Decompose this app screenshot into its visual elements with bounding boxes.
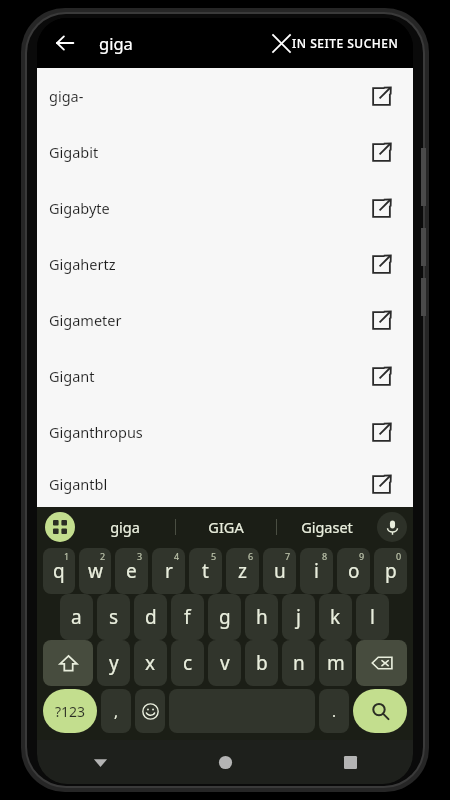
staticText: Gigantbl	[49, 474, 367, 494]
staticText: y	[109, 650, 119, 676]
button[interactable]: Open Gigantbl	[367, 470, 395, 498]
button[interactable]: giga	[75, 507, 175, 547]
button[interactable]: IN SEITE SUCHEN	[284, 21, 407, 65]
button[interactable]: Open Giganthropus	[367, 418, 395, 446]
button[interactable]: Recent apps	[288, 740, 413, 784]
staticText: Gigabyte	[49, 198, 367, 218]
button[interactable]: Gigant	[37, 348, 413, 404]
staticText: 5	[211, 550, 217, 562]
button[interactable]: b	[245, 640, 278, 686]
staticText: f	[184, 604, 191, 630]
button[interactable]: l	[356, 594, 389, 640]
staticText: 2	[100, 550, 106, 562]
button[interactable]: q	[43, 548, 75, 594]
staticText: giga	[99, 32, 133, 54]
staticText: q	[53, 558, 65, 584]
button[interactable]: Open Gigabit	[367, 138, 395, 166]
button[interactable]: Open giga-	[367, 82, 395, 110]
button[interactable]: Open Gigant	[367, 362, 395, 390]
button[interactable]: a	[60, 594, 93, 640]
staticText: b	[256, 650, 268, 676]
button[interactable]: Gigabyte	[37, 180, 413, 236]
staticText: a	[71, 604, 82, 630]
button[interactable]: Emoji	[135, 689, 165, 733]
staticText: s	[109, 604, 119, 630]
button[interactable]: v	[208, 640, 241, 686]
staticText: GIGA	[208, 517, 244, 537]
staticText: w	[88, 558, 103, 584]
staticText: ?123	[55, 702, 86, 721]
staticText: IN SEITE SUCHEN	[292, 35, 399, 51]
staticText: d	[145, 604, 157, 630]
staticText: k	[330, 604, 341, 630]
button[interactable]: x	[134, 640, 167, 686]
staticText: z	[238, 558, 247, 584]
button[interactable]: e	[115, 548, 148, 594]
button[interactable]: Comma	[101, 689, 131, 733]
staticText: 0	[396, 550, 402, 562]
button[interactable]: n	[282, 640, 315, 686]
button[interactable]: Backspace	[356, 640, 407, 686]
button[interactable]: Keyboard toolbar	[45, 512, 75, 542]
button[interactable]: s	[97, 594, 130, 640]
staticText: ,	[114, 701, 119, 721]
button[interactable]: t	[189, 548, 222, 594]
staticText: 3	[137, 550, 143, 562]
button[interactable]: Back	[45, 23, 85, 63]
button[interactable]: Gigantbl	[37, 460, 413, 507]
staticText: Gigant	[49, 366, 367, 386]
staticText: e	[126, 558, 137, 584]
staticText: g	[219, 604, 231, 630]
staticText: u	[274, 558, 286, 584]
button[interactable]: d	[134, 594, 167, 640]
button[interactable]: w	[79, 548, 111, 594]
button[interactable]: Open Gigabyte	[367, 194, 395, 222]
button[interactable]: g	[208, 594, 241, 640]
button[interactable]: c	[171, 640, 204, 686]
button[interactable]: f	[171, 594, 204, 640]
staticText: t	[202, 558, 209, 584]
staticText: j	[296, 604, 301, 630]
button[interactable]: Giganthropus	[37, 404, 413, 460]
button[interactable]: o	[337, 548, 370, 594]
staticText: Gigahertz	[49, 254, 367, 274]
button[interactable]: Home	[163, 740, 288, 784]
staticText: v	[220, 650, 230, 676]
button[interactable]: Clear search	[259, 21, 303, 65]
button[interactable]: Voice input	[377, 512, 407, 542]
button[interactable]: Period	[319, 689, 349, 733]
button[interactable]: Shift	[43, 640, 93, 686]
button[interactable]: Gigameter	[37, 292, 413, 348]
staticText: Gigameter	[49, 310, 367, 330]
button[interactable]: m	[319, 640, 352, 686]
button[interactable]: Open Gigahertz	[367, 250, 395, 278]
button[interactable]: Gigaset	[277, 507, 377, 547]
button[interactable]: r	[152, 548, 185, 594]
staticText: 9	[359, 550, 365, 562]
button[interactable]: i	[300, 548, 333, 594]
staticText: r	[165, 558, 173, 584]
button[interactable]: ?123	[43, 689, 97, 733]
staticText: 1	[64, 550, 70, 562]
button[interactable]: u	[263, 548, 296, 594]
button[interactable]: giga-	[37, 68, 413, 124]
button[interactable]: k	[319, 594, 352, 640]
staticText: x	[145, 650, 156, 676]
staticText: 6	[248, 550, 254, 562]
button[interactable]: z	[226, 548, 259, 594]
button[interactable]: Hide keyboard	[37, 740, 163, 784]
staticText: c	[183, 650, 193, 676]
button[interactable]: j	[282, 594, 315, 640]
button[interactable]: h	[245, 594, 278, 640]
staticText: Gigabit	[49, 142, 367, 162]
button[interactable]: y	[97, 640, 130, 686]
staticText: 7	[285, 550, 291, 562]
button[interactable]: Gigabit	[37, 124, 413, 180]
button[interactable]: Search	[353, 689, 407, 733]
button[interactable]: GIGA	[176, 507, 276, 547]
button[interactable]: p	[374, 548, 407, 594]
button[interactable]: Gigahertz	[37, 236, 413, 292]
button[interactable]: giga	[99, 21, 249, 65]
button[interactable]: Open Gigameter	[367, 306, 395, 334]
